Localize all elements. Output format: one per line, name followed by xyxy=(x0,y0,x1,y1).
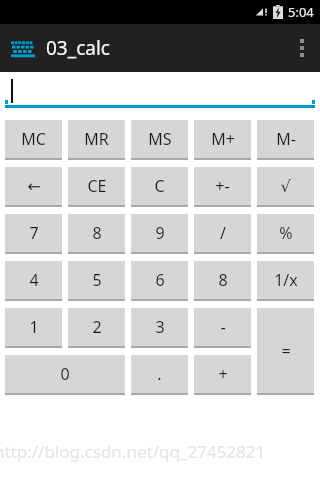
button[interactable]: √ xyxy=(257,167,314,207)
button[interactable]: ← xyxy=(5,167,62,207)
button[interactable] xyxy=(0,72,320,110)
button[interactable]: C xyxy=(131,167,188,207)
button[interactable]: = xyxy=(257,308,314,395)
button[interactable]: 6 xyxy=(131,261,188,301)
staticText: 5:04 xyxy=(288,3,314,21)
button[interactable]: . xyxy=(131,355,188,395)
staticText: http://blog.csdn.net/qq_27452821 xyxy=(0,440,266,463)
staticText: 7 xyxy=(29,222,39,244)
button[interactable]: 9 xyxy=(131,214,188,254)
staticText: MR xyxy=(84,128,109,150)
staticText: 1/x xyxy=(274,269,298,291)
button[interactable]: % xyxy=(257,214,314,254)
button[interactable]: MS xyxy=(131,120,188,160)
staticText: 03_calc xyxy=(46,35,110,61)
button[interactable]: More options xyxy=(284,24,320,72)
staticText: 8 xyxy=(92,222,102,244)
button[interactable]: CE xyxy=(68,167,125,207)
button[interactable]: / xyxy=(194,214,251,254)
button[interactable]: 5 xyxy=(68,261,125,301)
staticText: 2 xyxy=(92,316,102,338)
button[interactable]: 0 xyxy=(5,355,125,395)
staticText: % xyxy=(279,222,293,244)
staticText: 6 xyxy=(155,269,165,291)
staticText: ← xyxy=(27,177,41,196)
staticText: 9 xyxy=(155,222,165,244)
button[interactable]: M+ xyxy=(194,120,251,160)
button[interactable]: MC xyxy=(5,120,62,160)
button[interactable]: M- xyxy=(257,120,314,160)
staticText: MC xyxy=(21,128,46,150)
staticText: - xyxy=(220,316,226,338)
staticText: M+ xyxy=(211,128,235,150)
staticText: M- xyxy=(276,128,296,150)
button[interactable]: 4 xyxy=(5,261,62,301)
button[interactable]: 1 xyxy=(5,308,62,348)
button[interactable]: 7 xyxy=(5,214,62,254)
staticText: = xyxy=(281,340,291,362)
button[interactable]: 1/x xyxy=(257,261,314,301)
staticText: 1 xyxy=(29,316,39,338)
staticText: + xyxy=(218,363,228,385)
button[interactable]: +- xyxy=(194,167,251,207)
staticText: 3 xyxy=(155,316,165,338)
staticText: +- xyxy=(215,175,230,197)
button[interactable]: + xyxy=(194,355,251,395)
staticText: 8 xyxy=(218,269,228,291)
staticText: 5 xyxy=(92,269,102,291)
button[interactable]: MR xyxy=(68,120,125,160)
staticText: / xyxy=(220,222,226,244)
staticText: √ xyxy=(280,177,291,196)
staticText: MS xyxy=(148,128,172,150)
button[interactable]: - xyxy=(194,308,251,348)
button[interactable]: 8 xyxy=(68,214,125,254)
button[interactable]: 2 xyxy=(68,308,125,348)
staticText: . xyxy=(157,363,162,385)
staticText: 4 xyxy=(29,269,39,291)
button[interactable]: 8 xyxy=(194,261,251,301)
staticText: 0 xyxy=(60,363,70,385)
staticText: CE xyxy=(87,175,107,197)
staticText: C xyxy=(154,175,165,197)
button[interactable]: 3 xyxy=(131,308,188,348)
